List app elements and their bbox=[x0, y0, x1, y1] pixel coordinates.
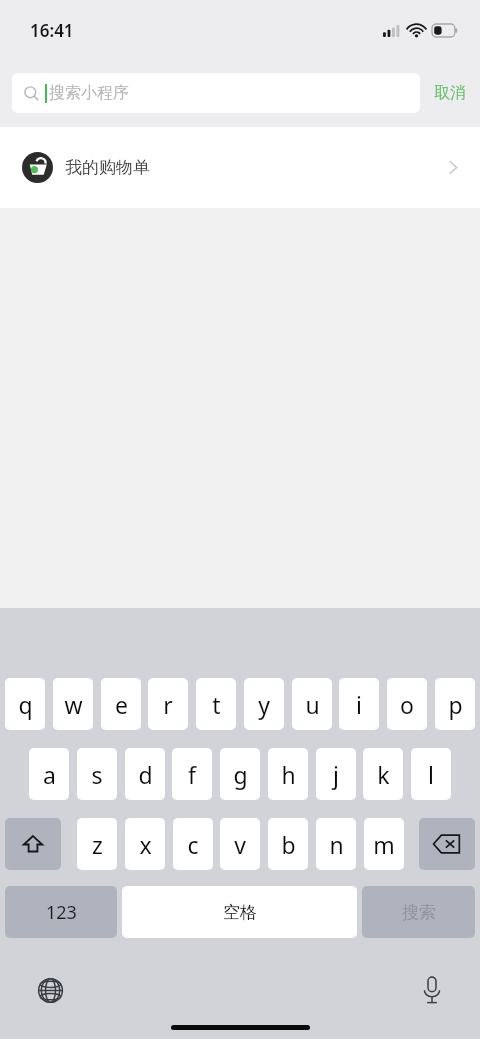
button[interactable]: x bbox=[125, 818, 165, 870]
staticText: e bbox=[115, 689, 128, 720]
staticText: j bbox=[333, 759, 339, 790]
button[interactable]: h bbox=[268, 748, 308, 800]
staticText: o bbox=[400, 689, 414, 720]
button[interactable]: Change keyboard language bbox=[28, 968, 72, 1012]
button[interactable]: Shift bbox=[5, 818, 61, 870]
staticText: 123 bbox=[46, 900, 77, 925]
button[interactable]: b bbox=[268, 818, 308, 870]
staticText: 16:41 bbox=[30, 19, 74, 42]
staticText: w bbox=[64, 689, 83, 720]
staticText: u bbox=[305, 689, 320, 720]
staticText: q bbox=[18, 689, 33, 720]
staticText: c bbox=[187, 829, 199, 860]
button[interactable]: o bbox=[387, 678, 427, 730]
button[interactable]: 123 bbox=[5, 886, 117, 938]
staticText: 搜索 bbox=[402, 902, 436, 923]
staticText: b bbox=[281, 829, 296, 860]
staticText: a bbox=[43, 759, 56, 790]
staticText: v bbox=[234, 829, 246, 860]
button[interactable]: g bbox=[220, 748, 260, 800]
staticText: t bbox=[212, 689, 221, 720]
button[interactable]: z bbox=[77, 818, 117, 870]
button[interactable]: 搜索小程序 bbox=[12, 73, 420, 113]
staticText: z bbox=[92, 829, 103, 860]
button[interactable]: w bbox=[53, 678, 93, 730]
button[interactable]: c bbox=[173, 818, 213, 870]
staticText: m bbox=[373, 829, 395, 860]
staticText: g bbox=[233, 759, 248, 790]
button[interactable]: Backspace bbox=[419, 818, 475, 870]
button[interactable]: d bbox=[125, 748, 165, 800]
button[interactable]: p bbox=[435, 678, 475, 730]
button[interactable]: e bbox=[101, 678, 141, 730]
button[interactable]: r bbox=[148, 678, 188, 730]
staticText: n bbox=[329, 829, 344, 860]
staticText: 搜索小程序 bbox=[49, 83, 129, 103]
button[interactable]: f bbox=[172, 748, 212, 800]
button[interactable]: Voice input bbox=[410, 968, 454, 1012]
button[interactable]: t bbox=[196, 678, 236, 730]
staticText: x bbox=[139, 829, 152, 860]
button[interactable]: v bbox=[220, 818, 260, 870]
button[interactable]: 取消 bbox=[420, 70, 480, 116]
button[interactable]: 搜索 bbox=[362, 886, 475, 938]
staticText: s bbox=[91, 759, 103, 790]
staticText: d bbox=[138, 759, 153, 790]
staticText: y bbox=[258, 689, 270, 720]
staticText: k bbox=[377, 759, 390, 790]
button[interactable]: u bbox=[292, 678, 332, 730]
button[interactable]: 我的购物单 bbox=[0, 127, 480, 208]
staticText: r bbox=[163, 689, 173, 720]
button[interactable]: q bbox=[5, 678, 45, 730]
staticText: 取消 bbox=[434, 83, 466, 103]
staticText: p bbox=[448, 689, 463, 720]
button[interactable]: j bbox=[316, 748, 356, 800]
staticText: l bbox=[428, 759, 434, 790]
button[interactable]: k bbox=[363, 748, 403, 800]
button[interactable]: y bbox=[244, 678, 284, 730]
staticText: f bbox=[188, 759, 196, 790]
button[interactable]: m bbox=[364, 818, 404, 870]
staticText: i bbox=[356, 689, 362, 720]
button[interactable]: s bbox=[77, 748, 117, 800]
button[interactable]: l bbox=[411, 748, 451, 800]
button[interactable]: a bbox=[29, 748, 69, 800]
button[interactable]: n bbox=[316, 818, 356, 870]
staticText: 空格 bbox=[223, 902, 257, 923]
button[interactable]: i bbox=[339, 678, 379, 730]
staticText: 我的购物单 bbox=[65, 157, 150, 178]
staticText: h bbox=[281, 759, 296, 790]
button[interactable]: 空格 bbox=[122, 886, 357, 938]
